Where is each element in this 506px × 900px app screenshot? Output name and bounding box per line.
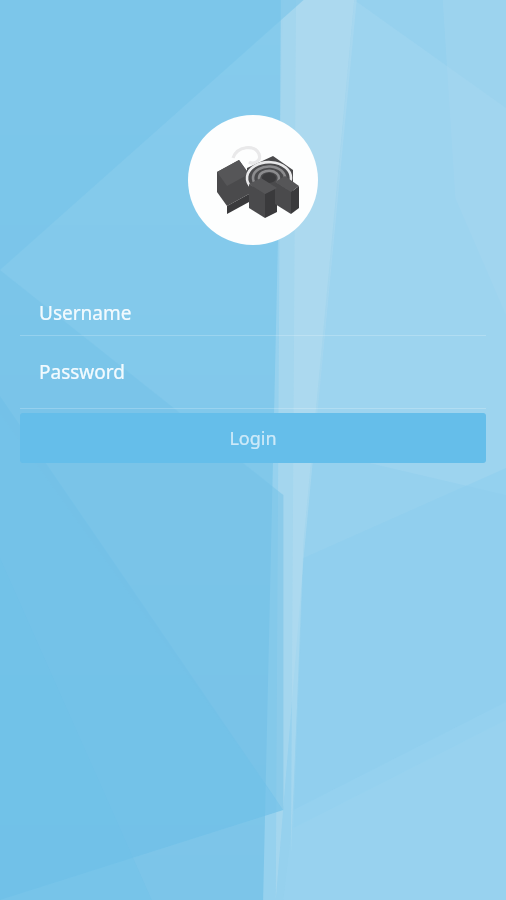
staticText: Password bbox=[39, 359, 125, 385]
staticText: Username bbox=[39, 300, 132, 326]
button[interactable]: Login bbox=[20, 413, 486, 463]
button[interactable]: Password bbox=[0, 357, 506, 387]
button[interactable]: Username bbox=[0, 290, 506, 335]
staticText: Login bbox=[229, 426, 277, 451]
